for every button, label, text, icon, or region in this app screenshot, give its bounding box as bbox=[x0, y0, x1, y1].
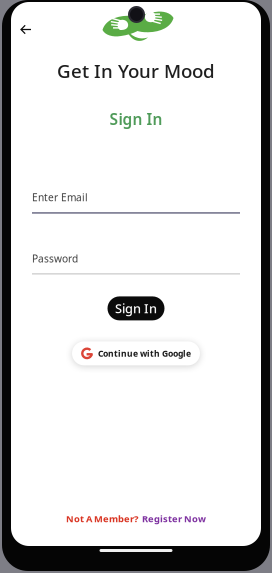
staticText: Not A Member? bbox=[66, 512, 138, 525]
button[interactable]: Register Now bbox=[142, 512, 206, 525]
staticText: Enter Email bbox=[32, 190, 88, 204]
staticText: Password bbox=[32, 252, 78, 265]
button[interactable]: Back bbox=[11, 2, 45, 45]
staticText: Get In Your Mood bbox=[57, 58, 215, 83]
staticText: Register Now bbox=[142, 512, 206, 525]
button[interactable]: Enter Email bbox=[32, 190, 240, 214]
staticText: Sign In bbox=[109, 108, 162, 129]
button[interactable]: Continue with Google bbox=[72, 341, 200, 365]
button[interactable]: Sign In bbox=[107, 296, 164, 320]
staticText: Sign In bbox=[115, 300, 157, 317]
button[interactable]: Password bbox=[32, 252, 240, 274]
staticText: Continue with Google bbox=[98, 348, 191, 359]
